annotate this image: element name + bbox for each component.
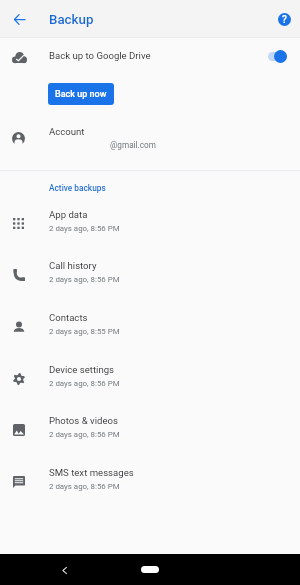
staticText: Back up now — [55, 89, 107, 100]
staticText: 2 days ago, 8:56 PM — [49, 482, 120, 491]
button[interactable]: Home — [141, 566, 159, 573]
button[interactable]: Back up now — [48, 83, 114, 105]
staticText: Device settings — [49, 364, 115, 375]
staticText: Contacts — [49, 312, 88, 323]
staticText: 2 days ago, 8:56 PM — [49, 224, 120, 233]
button[interactable]: SMS text messages — [0, 456, 300, 507]
staticText: Call history — [49, 260, 97, 271]
staticText: ? — [282, 14, 287, 26]
button[interactable]: Help — [269, 4, 299, 34]
button[interactable]: Navigate up — [4, 4, 34, 34]
staticText: Active backups — [49, 183, 106, 193]
staticText: Backup — [49, 12, 94, 28]
staticText: 2 days ago, 8:55 PM — [49, 327, 120, 336]
button[interactable]: Account — [0, 115, 300, 170]
button[interactable]: Call history — [0, 249, 300, 300]
button[interactable]: Back — [54, 560, 74, 580]
button[interactable]: Contacts — [0, 301, 300, 352]
staticText: 2 days ago, 8:56 PM — [49, 430, 120, 439]
staticText: 2 days ago, 8:56 PM — [49, 275, 120, 284]
staticText: @gmail.com — [110, 140, 156, 150]
staticText: Back up to Google Drive — [49, 50, 151, 61]
staticText: SMS text messages — [49, 467, 134, 478]
button[interactable]: Photos & videos — [0, 404, 300, 455]
staticText: 2 days ago, 8:56 PM — [49, 379, 120, 388]
staticText: Photos & videos — [49, 415, 118, 426]
button[interactable]: App data — [0, 198, 300, 249]
staticText: Account — [49, 126, 85, 137]
button[interactable]: Device settings — [0, 353, 300, 404]
staticText: App data — [49, 209, 88, 220]
button[interactable]: Back up to Google Drive — [0, 37, 300, 77]
